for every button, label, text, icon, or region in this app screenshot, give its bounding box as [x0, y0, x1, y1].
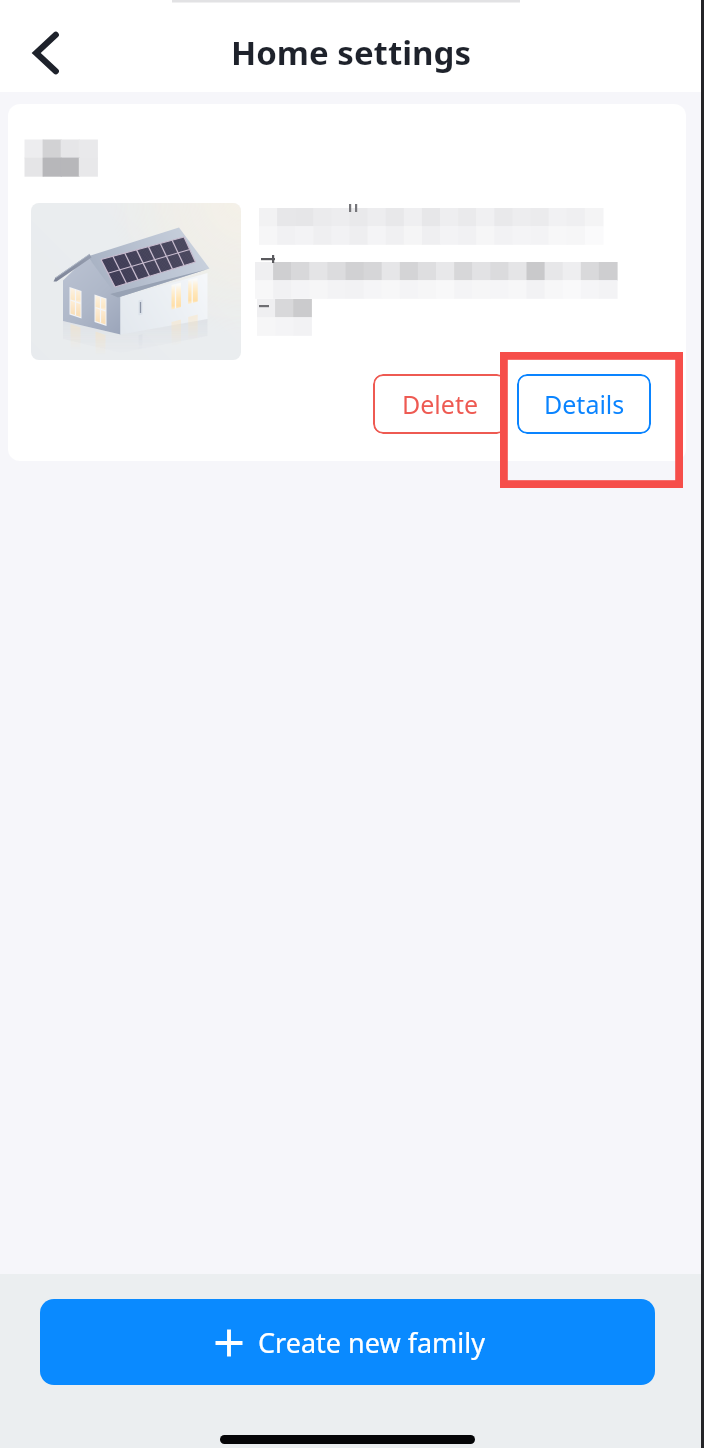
staticText: Delete: [402, 387, 479, 421]
staticText: Details: [544, 387, 625, 421]
button[interactable]: Back: [14, 21, 78, 85]
button[interactable]: Create new family: [40, 1299, 655, 1385]
button[interactable]: Details: [517, 374, 651, 434]
staticText: Create new family: [258, 1324, 486, 1361]
staticText: Home settings: [231, 30, 471, 75]
button[interactable]: Delete: [373, 374, 507, 434]
